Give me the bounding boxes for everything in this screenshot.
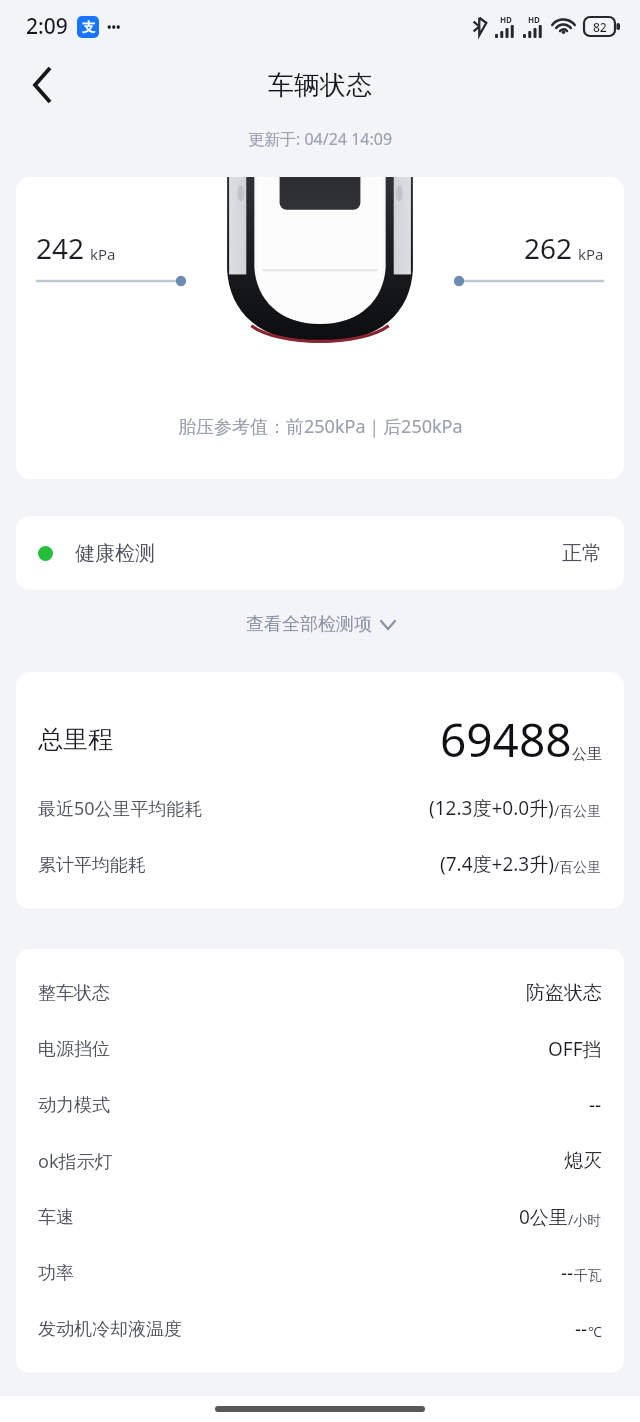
staticText: HD (500, 14, 512, 25)
staticText: (12.3度+0.0升) (429, 795, 554, 821)
staticText: 公里 (572, 745, 602, 764)
staticText: 健康检测 (75, 541, 155, 566)
staticText: 总里程 (38, 724, 113, 755)
staticText: OFF挡 (548, 1036, 602, 1062)
staticText: 动力模式 (38, 1094, 110, 1117)
staticText: 整车状态 (38, 982, 110, 1005)
staticText: (7.4度+2.3升) (440, 851, 554, 877)
staticText: HD (528, 14, 540, 25)
staticText: kPa (578, 244, 604, 264)
staticText: 车速 (38, 1206, 74, 1229)
staticText: /小时 (568, 1210, 602, 1229)
staticText: 69488 (440, 708, 572, 771)
staticText: 胎压参考值：前250kPa｜后250kPa (178, 414, 463, 439)
staticText: 2:09 (26, 12, 68, 41)
staticText: 242 (36, 229, 85, 267)
staticText: ok指示灯 (38, 1149, 113, 1174)
staticText: ••• (107, 19, 121, 35)
staticText: 正常 (562, 541, 602, 566)
staticText: /百公里 (554, 801, 602, 820)
staticText: 千瓦 (574, 1267, 602, 1285)
staticText: 0公里 (519, 1204, 568, 1230)
staticText: 车辆状态 (268, 69, 372, 102)
staticText: -- (561, 1260, 574, 1286)
staticText: 熄灭 (564, 1149, 602, 1173)
button[interactable]: 查看全部检测项 (0, 590, 640, 658)
staticText: -- (589, 1092, 602, 1118)
staticText: 防盗状态 (526, 981, 602, 1005)
staticText: 82 (593, 19, 607, 35)
staticText: /百公里 (554, 857, 602, 876)
staticText: 262 (524, 229, 573, 267)
button[interactable]: 返回 (12, 54, 74, 116)
staticText: 发动机冷却液温度 (38, 1318, 182, 1341)
button[interactable]: 健康检测 (16, 516, 624, 590)
staticText: 更新于: 04/24 14:09 (248, 128, 393, 150)
staticText: 支 (82, 19, 95, 35)
staticText: kPa (90, 244, 116, 264)
staticText: 累计平均能耗 (38, 854, 146, 877)
staticText: 功率 (38, 1262, 74, 1285)
staticText: 最近50公里平均能耗 (38, 796, 203, 821)
staticText: ℃ (588, 1322, 602, 1341)
staticText: 电源挡位 (38, 1038, 110, 1061)
staticText: 查看全部检测项 (246, 613, 372, 636)
staticText: -- (575, 1316, 588, 1342)
